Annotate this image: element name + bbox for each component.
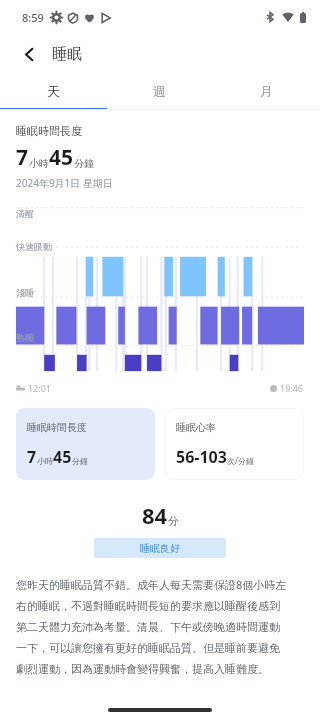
staticText: 8:59 [22, 10, 44, 25]
staticText: 熟睡 [16, 332, 34, 343]
button[interactable]: 週 [106, 74, 213, 108]
staticText: 天 [47, 83, 60, 99]
staticText: 12:01 [28, 382, 52, 394]
staticText: 劇烈運動，因為運動時會變得興奮，提高入睡難度。 [16, 662, 269, 676]
staticText: 19:46 [280, 382, 304, 394]
staticText: 第二天體力充沛為考量。清晨、下午或傍晚適時間運動 [16, 620, 280, 634]
staticText: 小時 [29, 157, 49, 170]
staticText: 右的睡眠，不過對睡眠時間長短的要求應以睡醒後感到 [16, 599, 280, 613]
button[interactable]: 天 [0, 74, 106, 108]
staticText: 您昨天的睡眠品質不錯。成年人每天需要保證8個小時左 [16, 577, 287, 592]
staticText: 快速眼動 [16, 241, 52, 252]
staticText: 分鐘 [72, 456, 88, 466]
staticText: 睡眠心率 [176, 421, 216, 434]
staticText: 2024年9月1日 星期日 [16, 176, 113, 190]
staticText: 45 [49, 143, 74, 172]
staticText: 7 [16, 143, 29, 172]
staticText: 清醒 [16, 208, 34, 219]
button[interactable]: 睡眠良好 [94, 538, 226, 558]
staticText: 週 [153, 83, 166, 99]
staticText: 45 [53, 446, 72, 468]
staticText: 84 [142, 500, 168, 530]
staticText: 小時 [37, 456, 53, 466]
staticText: 月 [260, 83, 273, 99]
button[interactable]: 月 [213, 74, 320, 108]
staticText: 睡眠時間長度 [16, 124, 82, 138]
staticText: 睡眠時間長度 [27, 421, 87, 434]
staticText: 7 [27, 446, 37, 468]
button[interactable]: 睡眠心率 [165, 408, 304, 480]
staticText: 一下，可以讓您擁有更好的睡眠品質。但是睡前要避免 [16, 641, 280, 655]
staticText: 淺睡 [16, 287, 34, 298]
staticText: 分鐘 [74, 157, 94, 170]
staticText: 56-103 [176, 446, 227, 468]
staticText: 次/分鐘 [227, 455, 254, 466]
button[interactable]: Back [14, 39, 44, 69]
staticText: 睡眠良好 [140, 542, 180, 555]
staticText: 睡眠 [52, 45, 82, 64]
staticText: 分 [168, 514, 179, 528]
button[interactable]: 睡眠時間長度 [16, 408, 155, 480]
